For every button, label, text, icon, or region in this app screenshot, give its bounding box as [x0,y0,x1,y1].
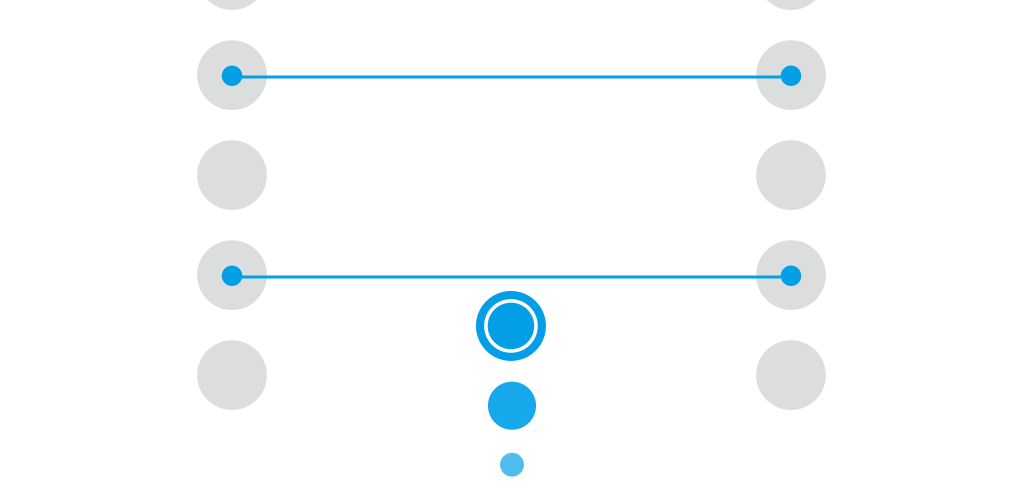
button[interactable]: Node [197,340,267,410]
button[interactable]: Node [756,40,826,110]
button[interactable]: Node [197,40,267,110]
button[interactable]: Node [756,140,826,210]
button[interactable]: Node [197,240,267,310]
button[interactable]: Selected connection [476,291,546,361]
button[interactable]: Node [756,240,826,310]
button[interactable]: Node [756,0,826,10]
button[interactable]: Connection [488,382,536,430]
button[interactable]: Node [197,140,267,210]
button[interactable]: Node [197,0,267,10]
button[interactable]: Connection [500,453,524,477]
button[interactable]: Node [756,340,826,410]
